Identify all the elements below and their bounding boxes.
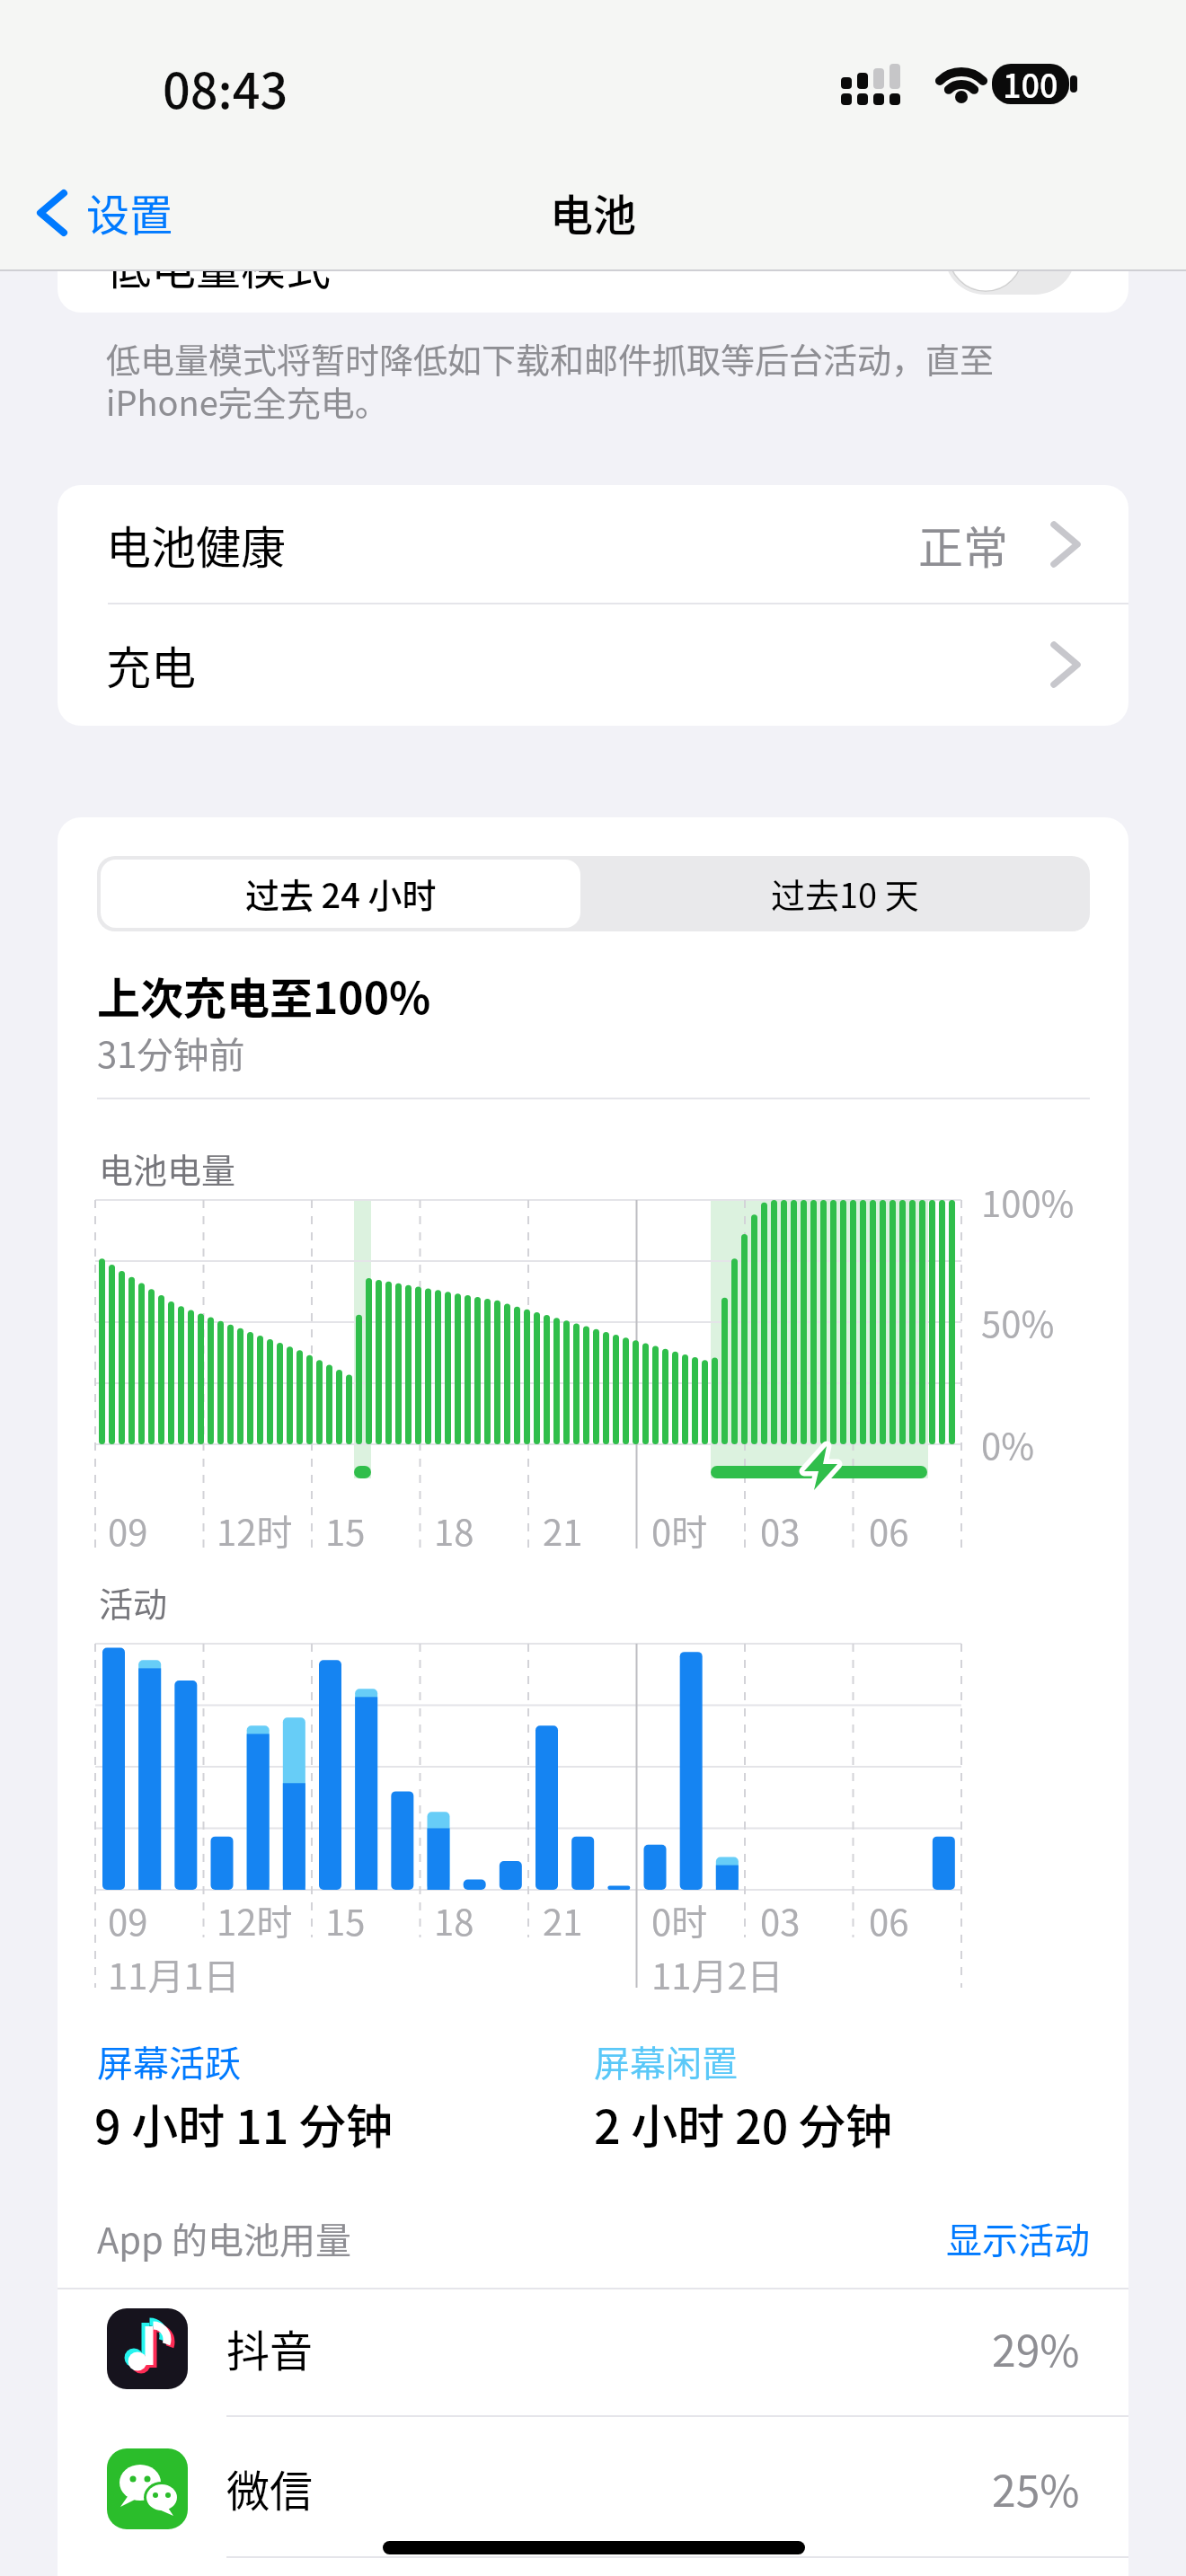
- button[interactable]: [27, 172, 225, 253]
- staticText: 29%: [992, 2316, 1080, 2379]
- staticText: 12时: [217, 1894, 293, 1946]
- button[interactable]: [593, 856, 1090, 931]
- staticText: 06: [869, 1504, 909, 1557]
- button[interactable]: [58, 485, 1128, 604]
- staticText: 屏幕闲置: [594, 2035, 738, 2087]
- staticText: 2 小时 20 分钟: [594, 2090, 893, 2157]
- staticText: 低电量模式: [106, 233, 331, 297]
- button[interactable]: [58, 2417, 1128, 2556]
- staticText: 21: [543, 1894, 583, 1946]
- staticText: 31分钟前: [97, 1027, 245, 1079]
- staticText: 18: [434, 1504, 474, 1557]
- staticText: 屏幕活跃: [97, 2035, 241, 2087]
- staticText: 03: [760, 1504, 801, 1557]
- staticText: 9 小时 11 分钟: [94, 2090, 394, 2157]
- staticText: 抖音: [226, 2316, 314, 2379]
- staticText: 电池: [550, 181, 637, 243]
- staticText: 15: [325, 1504, 366, 1557]
- staticText: 50%: [981, 1296, 1055, 1348]
- staticText: 11月1日: [108, 1948, 240, 2000]
- staticText: 正常: [918, 512, 1008, 577]
- staticText: 0时: [651, 1504, 708, 1557]
- staticText: 06: [869, 1894, 909, 1946]
- staticText: 25%: [992, 2457, 1080, 2519]
- staticText: 0时: [651, 1894, 708, 1946]
- staticText: 过去 24 小时: [245, 869, 437, 918]
- staticText: 15: [325, 1894, 366, 1946]
- staticText: 显示活动: [946, 2212, 1090, 2264]
- staticText: 21: [543, 1504, 583, 1557]
- staticText: 09: [108, 1504, 148, 1557]
- staticText: App 的电池用量: [97, 2212, 351, 2264]
- staticText: 电池健康: [106, 512, 286, 577]
- staticText: 设置: [86, 181, 173, 243]
- staticText: 微信: [226, 2457, 314, 2519]
- button[interactable]: [58, 2292, 1128, 2416]
- staticText: 上次充电至100%: [97, 964, 431, 1027]
- staticText: 活动: [99, 1577, 168, 1627]
- staticText: iPhone完全充电。: [106, 376, 389, 426]
- staticText: 低电量模式将暂时降低如下载和邮件抓取等后台活动，直至: [106, 333, 995, 383]
- staticText: 09: [108, 1894, 148, 1946]
- staticText: 08:43: [163, 52, 288, 122]
- staticText: 18: [434, 1894, 474, 1946]
- staticText: 100%: [981, 1176, 1075, 1228]
- staticText: 03: [760, 1894, 801, 1946]
- staticText: 100: [1003, 60, 1058, 107]
- button[interactable]: [97, 856, 593, 931]
- button[interactable]: 显示活动: [892, 2184, 1090, 2292]
- staticText: 过去10 天: [771, 869, 919, 918]
- staticText: 11月2日: [651, 1948, 783, 2000]
- staticText: 0%: [981, 1418, 1035, 1470]
- staticText: 充电: [106, 632, 196, 697]
- button[interactable]: [58, 162, 1128, 313]
- staticText: 12时: [217, 1504, 293, 1557]
- button[interactable]: [58, 605, 1128, 726]
- staticText: 电池电量: [99, 1143, 236, 1193]
